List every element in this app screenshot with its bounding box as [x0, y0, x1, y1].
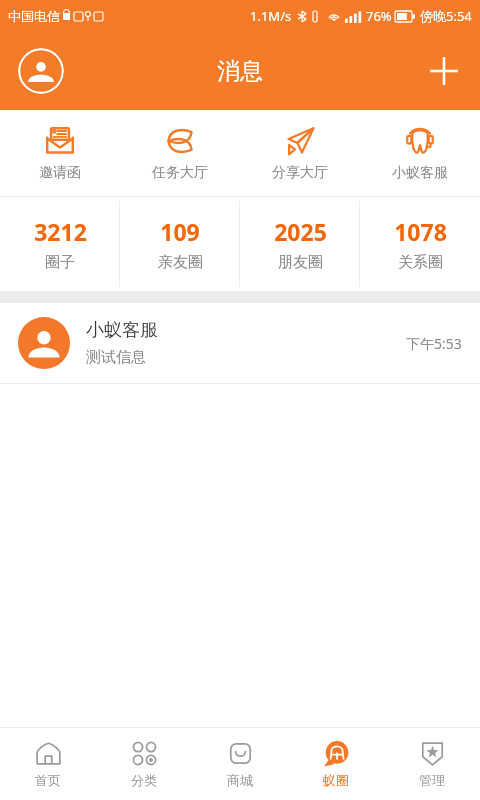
staticText: 测试信息 — [86, 348, 146, 367]
staticText: 109 — [160, 216, 200, 247]
staticText: 分享大厅 — [272, 164, 328, 182]
staticText: 下午5:53 — [406, 334, 462, 353]
staticText: 首页 — [35, 772, 61, 788]
staticText: 管理 — [419, 772, 445, 788]
button[interactable]: 1078 — [360, 197, 480, 291]
staticText: 商城 — [227, 772, 253, 788]
button[interactable]: 商城 — [192, 728, 288, 800]
button[interactable]: 首页 — [0, 728, 96, 800]
staticText: 朋友圈 — [278, 253, 323, 272]
staticText: 圈子 — [45, 253, 75, 272]
button[interactable]: Add — [422, 49, 466, 93]
button[interactable]: 2025 — [240, 197, 360, 291]
staticText: 分类 — [131, 772, 157, 788]
staticText: 1.1M/s — [250, 7, 292, 25]
staticText: 2025 — [274, 216, 327, 247]
button[interactable]: 邀请函 — [0, 110, 120, 196]
staticText: 小蚁客服 — [392, 164, 448, 182]
button[interactable]: 蚁圈 — [288, 728, 384, 800]
button[interactable]: Profile — [18, 48, 64, 94]
button[interactable]: 管理 — [384, 728, 480, 800]
staticText: 蚁圈 — [323, 772, 349, 788]
staticText: 消息 — [217, 57, 263, 86]
staticText: 中国电信 — [8, 8, 60, 24]
staticText: 76% — [366, 7, 392, 25]
button[interactable]: 小蚁客服 — [0, 303, 480, 383]
staticText: 关系圈 — [398, 253, 443, 272]
button[interactable]: 109 — [120, 197, 240, 291]
button[interactable]: 3212 — [0, 197, 120, 291]
staticText: 任务大厅 — [152, 164, 208, 182]
staticText: 邀请函 — [39, 164, 81, 182]
staticText: 亲友圈 — [158, 253, 203, 272]
staticText: 小蚁客服 — [86, 319, 158, 342]
button[interactable]: 分类 — [96, 728, 192, 800]
staticText: 3212 — [34, 216, 87, 247]
staticText: 1078 — [394, 216, 447, 247]
button[interactable]: 小蚁客服 — [360, 110, 480, 196]
button[interactable]: 分享大厅 — [240, 110, 360, 196]
staticText: 傍晚5:54 — [420, 7, 472, 25]
button[interactable]: 任务大厅 — [120, 110, 240, 196]
